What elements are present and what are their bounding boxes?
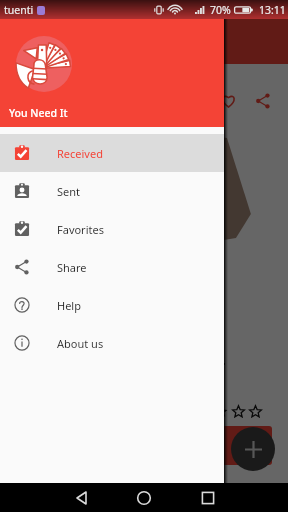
button[interactable]: Back <box>70 486 94 510</box>
button[interactable]: Add <box>231 427 275 471</box>
button[interactable] <box>0 0 288 512</box>
button[interactable] <box>16 426 272 465</box>
button[interactable]: Favorites <box>0 210 224 248</box>
staticText: You Need It <box>9 106 68 120</box>
staticText: 70% <box>210 3 231 17</box>
button[interactable]: Share <box>0 248 224 286</box>
staticText: Share <box>57 260 87 275</box>
staticText: Received <box>57 146 103 161</box>
button[interactable]: Recents <box>196 486 220 510</box>
button[interactable]: Share <box>255 93 271 109</box>
staticText: tuenti <box>4 3 34 17</box>
staticText: 13:11 <box>259 3 286 17</box>
button[interactable]: About us <box>0 324 224 362</box>
staticText: Favorites <box>57 222 104 237</box>
button[interactable]: Home <box>132 486 156 510</box>
button[interactable]: Sent <box>0 172 224 210</box>
button[interactable]: Favorite <box>220 92 237 109</box>
button[interactable]: Received <box>0 134 224 172</box>
staticText: Sent <box>57 184 81 199</box>
staticText: Help <box>57 298 81 313</box>
staticText: About us <box>57 336 104 351</box>
button[interactable]: Help <box>0 286 224 324</box>
